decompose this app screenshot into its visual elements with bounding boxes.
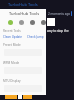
staticText: way to stop the <box>47 29 69 33</box>
staticText: Clean Update <box>3 35 23 39</box>
staticText: 2 moments ago <box>48 12 71 16</box>
staticText: WPM Mode <box>3 61 20 65</box>
staticText: TurboHub Tools <box>8 2 38 7</box>
staticText: TurboHub Tools <box>9 11 40 16</box>
staticText: Recent Tools <box>3 29 21 33</box>
staticText: Preset Mode <box>3 43 21 47</box>
staticText: MTU Display <box>3 79 21 83</box>
staticText: Check Jump <box>27 35 44 39</box>
